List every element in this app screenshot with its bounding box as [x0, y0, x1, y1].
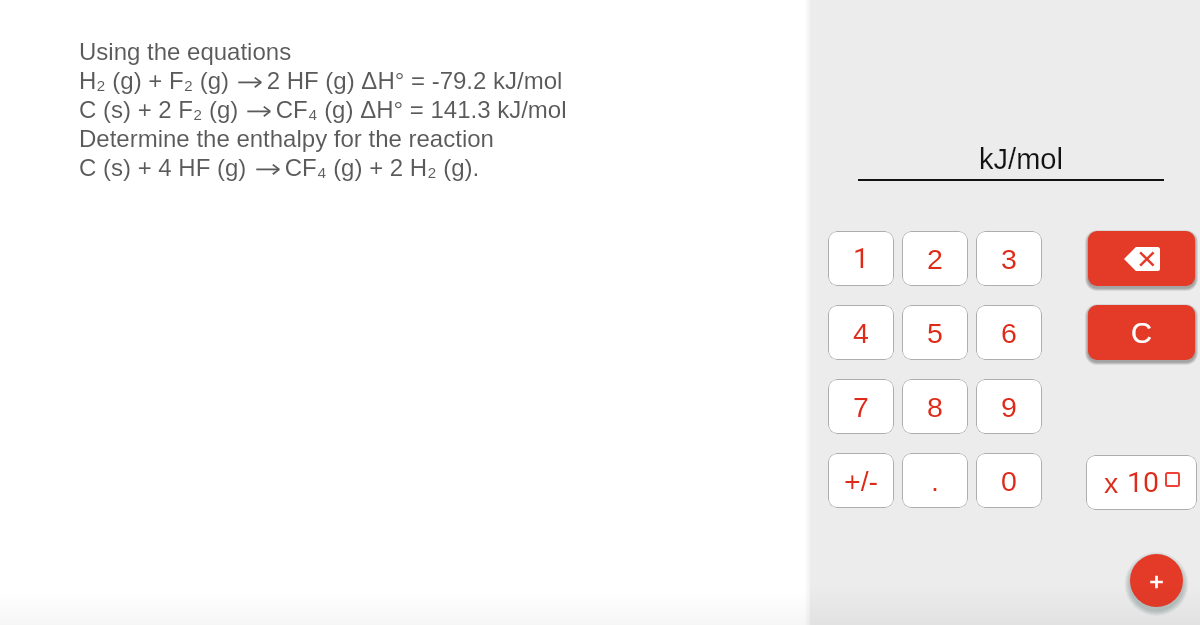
staticText: 1: [853, 242, 870, 275]
button[interactable]: C: [1088, 305, 1195, 360]
staticText: H₂ (g) + F₂ (g): [79, 67, 236, 94]
staticText: 6: [1001, 317, 1017, 349]
button[interactable]: .: [902, 453, 968, 508]
button[interactable]: 2: [902, 231, 968, 286]
staticText: kJ/mol: [868, 143, 1174, 175]
staticText: 0: [1001, 465, 1017, 497]
staticText: CF₄ (g) + 2 H₂ (g).: [278, 154, 480, 181]
staticText: 3: [1001, 243, 1017, 275]
staticText: 7: [853, 391, 869, 423]
button[interactable]: 6: [976, 305, 1042, 360]
button[interactable]: 1: [828, 231, 894, 286]
staticText: Using the equations: [79, 38, 292, 65]
staticText: x: [1104, 467, 1127, 499]
staticText: 4: [853, 317, 869, 349]
staticText: C (s) + 4 HF (g): [79, 154, 254, 181]
button[interactable]: 5: [902, 305, 968, 360]
staticText: +/-: [844, 465, 879, 497]
staticText: C (s) + 2 F₂ (g): [79, 96, 245, 123]
button[interactable]: +/-: [828, 453, 894, 508]
staticText: .: [931, 465, 939, 497]
button[interactable]: 0: [976, 453, 1042, 508]
staticText: Determine the enthalpy for the reaction: [79, 125, 494, 152]
staticText: 5: [927, 317, 943, 349]
staticText: C: [1131, 317, 1152, 349]
button[interactable]: Add: [1130, 554, 1183, 607]
button[interactable]: x: [1086, 455, 1197, 510]
staticText: 2 HF (g) ΔH° = -79.2 kJ/mol: [260, 67, 563, 94]
button[interactable]: 8: [902, 379, 968, 434]
staticText: 9: [1001, 391, 1017, 423]
staticText: 8: [927, 391, 943, 423]
staticText: CF₄ (g) ΔH° = 141.3 kJ/mol: [269, 96, 567, 123]
button[interactable]: 9: [976, 379, 1042, 434]
staticText: 10: [1127, 466, 1160, 499]
button[interactable]: 3: [976, 231, 1042, 286]
staticText: 2: [927, 243, 943, 275]
button[interactable]: 7: [828, 379, 894, 434]
button[interactable]: Backspace: [1088, 231, 1195, 286]
button[interactable]: 4: [828, 305, 894, 360]
